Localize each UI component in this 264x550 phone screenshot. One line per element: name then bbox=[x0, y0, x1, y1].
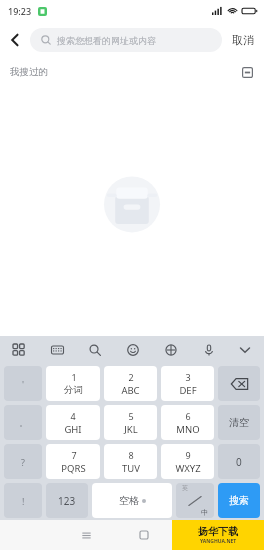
button[interactable]: 9 bbox=[161, 444, 214, 479]
button[interactable]: 123 bbox=[46, 483, 88, 518]
staticText: 。 bbox=[19, 417, 28, 428]
button[interactable]: Hide keyboard bbox=[234, 339, 256, 361]
staticText: 清空 bbox=[229, 416, 249, 429]
staticText: 中 bbox=[201, 508, 208, 517]
staticText: 3 bbox=[185, 371, 191, 383]
button[interactable]: 5 bbox=[104, 405, 157, 440]
button[interactable]: Home bbox=[115, 520, 172, 550]
button[interactable]: ? bbox=[4, 444, 42, 479]
button[interactable]: 空格 bbox=[92, 483, 172, 518]
button[interactable]: 搜索您想看的网址或内容 bbox=[30, 28, 222, 52]
button[interactable]: 0 bbox=[218, 444, 260, 479]
staticText: 0 bbox=[236, 455, 242, 469]
staticText: ? bbox=[21, 456, 25, 468]
button[interactable]: 取消 bbox=[222, 22, 264, 58]
staticText: WXYZ bbox=[175, 462, 201, 475]
button[interactable]: 3 bbox=[161, 366, 214, 401]
button[interactable]: 2 bbox=[104, 366, 157, 401]
staticText: 2 bbox=[128, 371, 134, 383]
staticText: 19:23 bbox=[8, 5, 32, 17]
staticText: 英 bbox=[182, 484, 188, 492]
button[interactable]: 清空 bbox=[218, 405, 260, 440]
staticText: YANGHUA.NET bbox=[200, 538, 237, 545]
button[interactable]: Emoji bbox=[122, 339, 144, 361]
button[interactable]: Voice input bbox=[198, 339, 220, 361]
button[interactable]: 6 bbox=[161, 405, 214, 440]
button[interactable]: 4 bbox=[46, 405, 100, 440]
staticText: 8 bbox=[128, 449, 134, 461]
button[interactable]: Apps bbox=[8, 339, 30, 361]
button[interactable]: ! bbox=[4, 483, 42, 518]
staticText: ! bbox=[22, 495, 25, 507]
staticText: 空格 bbox=[119, 494, 139, 507]
button[interactable]: 8 bbox=[104, 444, 157, 479]
staticText: 1 bbox=[71, 371, 77, 383]
staticText: 4 bbox=[70, 410, 76, 422]
staticText: 9 bbox=[185, 449, 191, 461]
staticText: TUV bbox=[122, 462, 140, 475]
staticText: 我搜过的 bbox=[10, 66, 48, 78]
staticText: DEF bbox=[179, 384, 197, 397]
staticText: GHI bbox=[64, 423, 82, 436]
button[interactable]: 7 bbox=[46, 444, 100, 479]
staticText: 搜索您想看的网址或内容 bbox=[57, 35, 156, 46]
staticText: 搜索 bbox=[229, 494, 249, 507]
staticText: PQRS bbox=[61, 462, 86, 475]
staticText: ' bbox=[22, 378, 25, 390]
button[interactable]: Settings bbox=[160, 339, 182, 361]
staticText: MNO bbox=[176, 423, 200, 436]
staticText: 取消 bbox=[232, 33, 254, 47]
staticText: ABC bbox=[121, 384, 140, 397]
staticText: JKL bbox=[124, 423, 138, 436]
button[interactable]: Switch language bbox=[176, 483, 214, 518]
staticText: 123 bbox=[58, 494, 76, 508]
button[interactable]: Search bbox=[84, 339, 106, 361]
button[interactable]: Keyboard bbox=[46, 339, 68, 361]
button[interactable]: Clear history bbox=[234, 59, 260, 85]
staticText: 6 bbox=[185, 410, 191, 422]
staticText: 分词 bbox=[64, 384, 83, 396]
button[interactable]: Back bbox=[0, 22, 30, 58]
button[interactable]: 搜索 bbox=[218, 483, 260, 518]
button[interactable]: Menu bbox=[58, 520, 115, 550]
button[interactable]: Backspace bbox=[218, 366, 260, 401]
staticText: 扬华下载 bbox=[198, 525, 238, 538]
button[interactable]: 1 bbox=[46, 366, 100, 401]
staticText: 7 bbox=[71, 449, 77, 461]
staticText: 5 bbox=[128, 410, 134, 422]
